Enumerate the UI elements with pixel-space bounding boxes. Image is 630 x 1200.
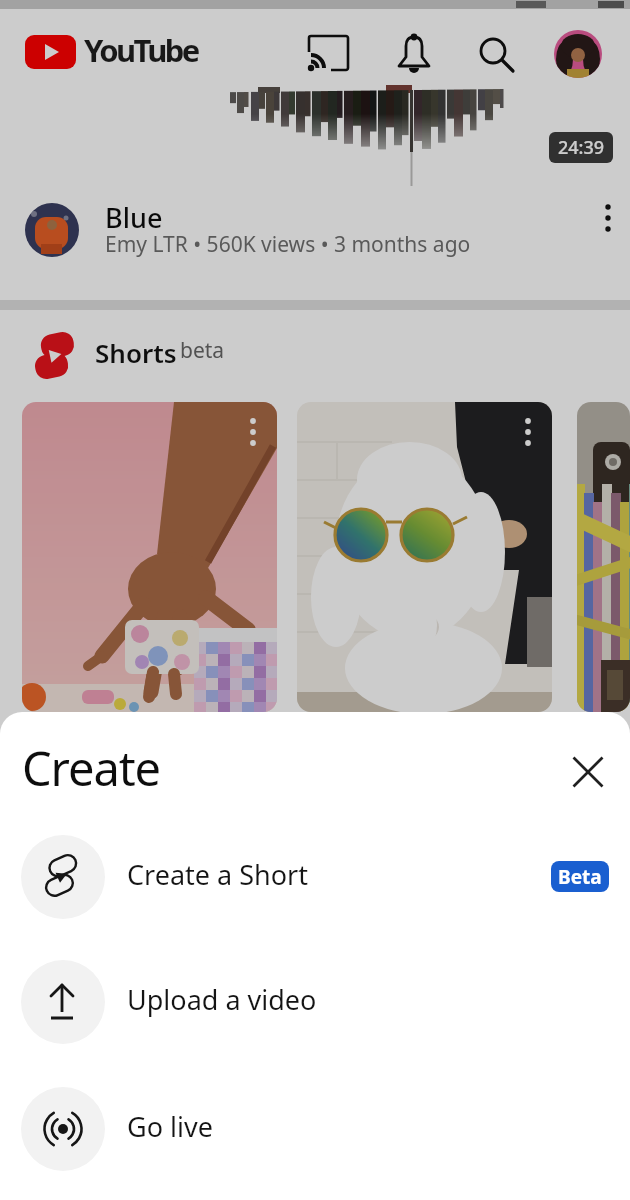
staticText: Create [22,736,160,800]
button[interactable] [594,198,622,242]
staticText: Upload a video [127,981,317,1018]
button[interactable]: Upload a video [0,960,630,1044]
staticText: Shorts [95,335,177,370]
staticText: 24:39 [558,135,605,160]
button[interactable] [478,36,518,76]
staticText: Beta [558,864,602,890]
staticText: Blue [105,199,163,236]
button[interactable] [564,748,612,796]
staticText: Emy LTR • 560K views • 3 months ago [105,230,471,259]
staticText: Go live [127,1108,213,1145]
staticText: beta [180,336,225,365]
button[interactable] [22,402,277,712]
button[interactable] [554,30,602,78]
button[interactable]: Create a Short [0,835,630,919]
button[interactable] [396,33,432,79]
staticText: YouTube [84,29,198,71]
button[interactable] [302,30,354,76]
button[interactable] [577,402,630,712]
button[interactable]: Go live [0,1087,630,1171]
staticText: Create a Short [127,856,308,893]
button[interactable] [0,190,630,295]
button[interactable] [297,402,552,712]
